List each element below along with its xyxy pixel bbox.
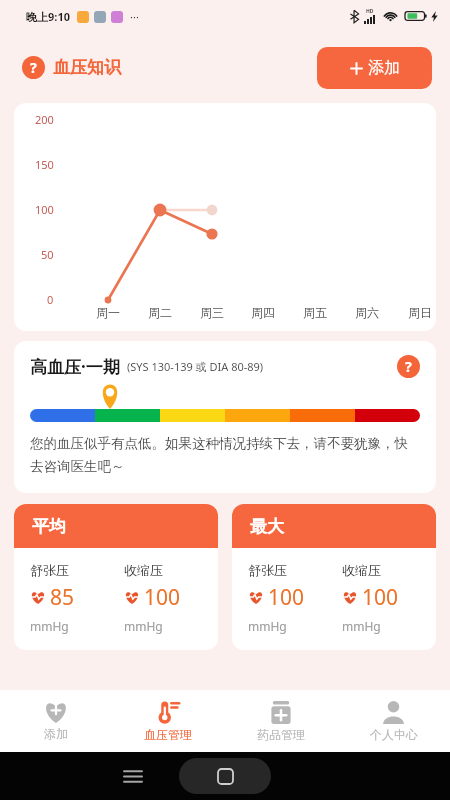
staticText: 周三: [200, 305, 224, 320]
staticText: HD: [366, 8, 374, 15]
staticText: 50: [41, 247, 54, 262]
staticText: 添加: [44, 726, 68, 741]
staticText: 添加: [368, 58, 400, 78]
staticText: 150: [35, 157, 54, 172]
staticText: 周二: [148, 305, 172, 320]
staticText: 100: [144, 583, 181, 612]
staticText: 收缩压: [124, 562, 163, 578]
staticText: 100: [35, 202, 54, 217]
staticText: 0: [47, 292, 54, 307]
staticText: 个人中心: [370, 727, 418, 742]
button[interactable]: 平均: [14, 504, 218, 650]
staticText: 周六: [355, 305, 379, 320]
staticText: 收缩压: [342, 562, 381, 578]
staticText: mmHg: [30, 618, 69, 634]
staticText: 周日: [408, 305, 432, 320]
staticText: 平均: [32, 516, 66, 537]
staticText: 最大: [250, 516, 284, 537]
staticText: 您的血压似乎有点低。如果这种情况持续下去，请不要犹豫，快去咨询医生吧～: [30, 435, 420, 475]
staticText: 高血压·一期: [30, 355, 120, 378]
other: Menu: [124, 770, 142, 783]
staticText: ?: [405, 357, 412, 376]
staticText: 100: [362, 583, 399, 612]
staticText: 100: [268, 583, 305, 612]
staticText: 血压知识: [53, 57, 121, 78]
button[interactable]: 药品管理: [224, 690, 337, 752]
button[interactable]: 血压管理: [112, 690, 224, 752]
staticText: 血压管理: [144, 727, 192, 742]
staticText: ···: [130, 9, 139, 24]
staticText: (SYS 130-139 或 DIA 80-89): [127, 359, 264, 374]
staticText: 晚上9:10: [26, 9, 70, 24]
staticText: 舒张压: [30, 562, 69, 578]
staticText: 85: [50, 583, 75, 612]
button[interactable]: 个人中心: [337, 690, 450, 752]
button[interactable]: ?: [22, 56, 121, 79]
staticText: mmHg: [124, 618, 163, 634]
staticText: mmHg: [248, 618, 287, 634]
staticText: 周四: [251, 305, 275, 320]
button[interactable]: 最大: [232, 504, 436, 650]
button[interactable]: 添加: [317, 47, 432, 89]
staticText: 舒张压: [248, 562, 287, 578]
other: Home: [218, 769, 233, 784]
staticText: mmHg: [342, 618, 381, 634]
staticText: 200: [35, 112, 54, 127]
staticText: 周五: [303, 305, 327, 320]
button[interactable]: 添加: [0, 690, 112, 752]
staticText: 周一: [96, 305, 120, 320]
staticText: 药品管理: [257, 727, 305, 742]
button[interactable]: 血压分级说明: [397, 355, 420, 378]
staticText: ?: [30, 58, 37, 77]
